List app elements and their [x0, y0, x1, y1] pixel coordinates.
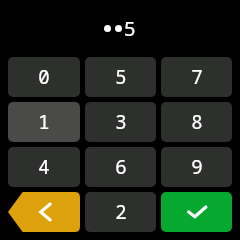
button[interactable]: 9 [161, 147, 232, 187]
staticText: 1 [38, 109, 50, 135]
staticText: 6 [115, 154, 127, 180]
staticText: 5 [115, 64, 127, 90]
button[interactable]: 2 [85, 192, 156, 232]
button[interactable]: Confirm [161, 192, 232, 232]
staticText: 9 [191, 154, 203, 180]
staticText: 0 [38, 64, 50, 90]
staticText: 4 [38, 154, 50, 180]
staticText: 3 [115, 109, 127, 135]
button[interactable]: 6 [85, 147, 156, 187]
staticText: 8 [191, 109, 203, 135]
staticText: 5 [124, 15, 136, 42]
button[interactable]: 4 [8, 147, 80, 187]
button[interactable]: Backspace [8, 192, 80, 232]
button[interactable]: 0 [8, 57, 80, 97]
staticText: 7 [191, 64, 203, 90]
button[interactable]: 7 [161, 57, 232, 97]
button[interactable]: 5 [85, 57, 156, 97]
button[interactable]: 8 [161, 102, 232, 142]
staticText: 2 [115, 199, 127, 225]
button[interactable]: 1 [8, 102, 80, 142]
button[interactable]: 3 [85, 102, 156, 142]
